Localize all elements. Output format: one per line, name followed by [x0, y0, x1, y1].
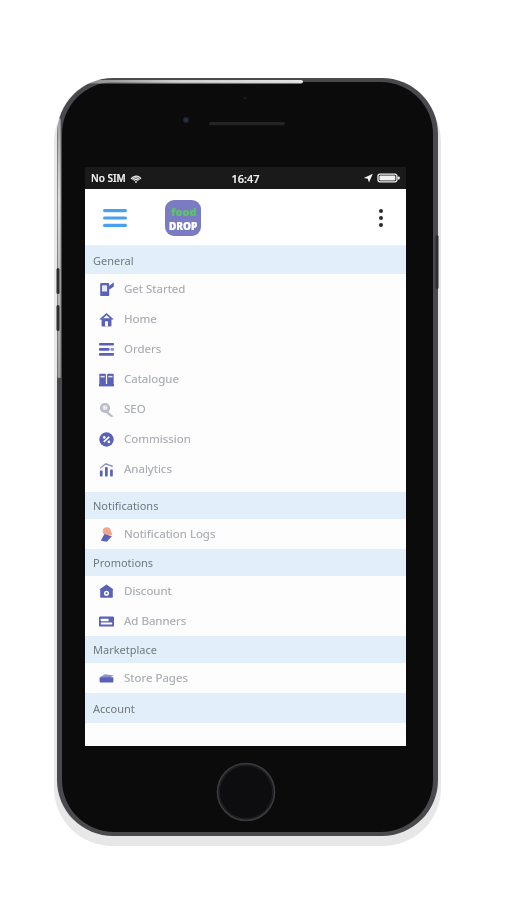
button[interactable]: Analytics [85, 454, 406, 484]
staticText: Orders [124, 341, 162, 357]
button[interactable]: More options [364, 198, 398, 238]
button[interactable]: SEO [85, 394, 406, 424]
staticText: Notification Logs [124, 526, 216, 542]
button[interactable]: Get Started [85, 274, 406, 304]
staticText: food [171, 204, 197, 219]
button[interactable]: Food Drop logo [163, 198, 203, 238]
staticText: Marketplace [93, 642, 157, 657]
button[interactable]: Home [85, 304, 406, 334]
staticText: General [93, 253, 134, 268]
button[interactable]: Store Pages [85, 663, 406, 693]
staticText: Discount [124, 583, 172, 599]
staticText: Analytics [124, 461, 172, 477]
staticText: Home [124, 311, 157, 327]
button[interactable]: Ad Banners [85, 606, 406, 636]
staticText: Ad Banners [124, 613, 187, 629]
staticText: Commission [124, 431, 191, 447]
staticText: Promotions [93, 555, 154, 570]
staticText: No SIM [91, 171, 126, 185]
staticText: Catalogue [124, 371, 179, 387]
button[interactable]: Notification Logs [85, 519, 406, 549]
button[interactable]: Open navigation menu [97, 200, 133, 236]
staticText: Get Started [124, 281, 186, 297]
staticText: Account [93, 701, 135, 716]
button[interactable]: Catalogue [85, 364, 406, 394]
button[interactable]: Discount [85, 576, 406, 606]
staticText: 16:47 [231, 171, 260, 186]
staticText: Store Pages [124, 670, 188, 686]
staticText: DROP [169, 219, 198, 233]
staticText: Notifications [93, 498, 159, 513]
staticText: SEO [124, 401, 146, 417]
button[interactable]: Commission [85, 424, 406, 454]
button[interactable]: Orders [85, 334, 406, 364]
